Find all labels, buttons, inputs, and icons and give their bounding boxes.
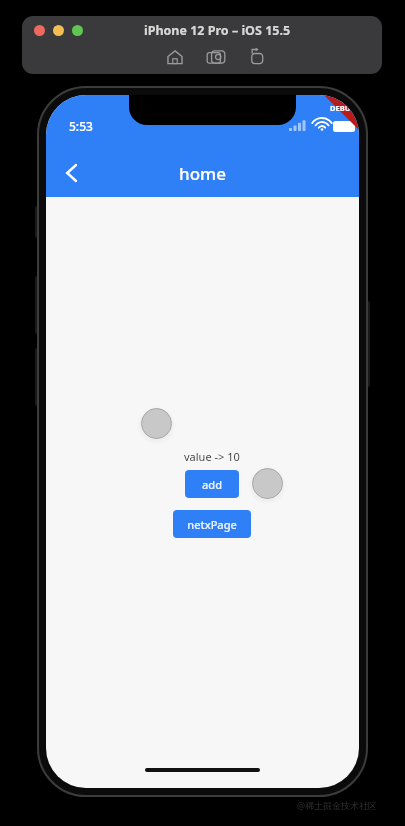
- button[interactable]: Screenshot: [205, 46, 227, 68]
- button[interactable]: Zoom: [72, 25, 83, 36]
- button[interactable]: netxPage: [173, 510, 251, 538]
- staticText: @稀土掘金技术社区: [297, 799, 378, 811]
- staticText: DEBUG: [330, 103, 356, 113]
- button[interactable]: Back: [52, 153, 92, 193]
- staticText: 5:53: [69, 118, 93, 134]
- button[interactable]: Close: [34, 25, 45, 36]
- staticText: netxPage: [187, 517, 237, 532]
- button[interactable]: Circle one: [140, 407, 173, 440]
- staticText: home: [46, 162, 359, 188]
- button[interactable]: Circle two: [251, 467, 284, 500]
- button[interactable]: add: [185, 470, 239, 498]
- button[interactable]: Home: [164, 46, 186, 68]
- staticText: value -> 10: [184, 449, 240, 464]
- button[interactable]: Minimize: [53, 25, 64, 36]
- staticText: iPhone 12 Pro – iOS 15.5: [122, 22, 312, 40]
- staticText: add: [202, 477, 222, 492]
- button[interactable]: Record screen: [246, 46, 268, 68]
